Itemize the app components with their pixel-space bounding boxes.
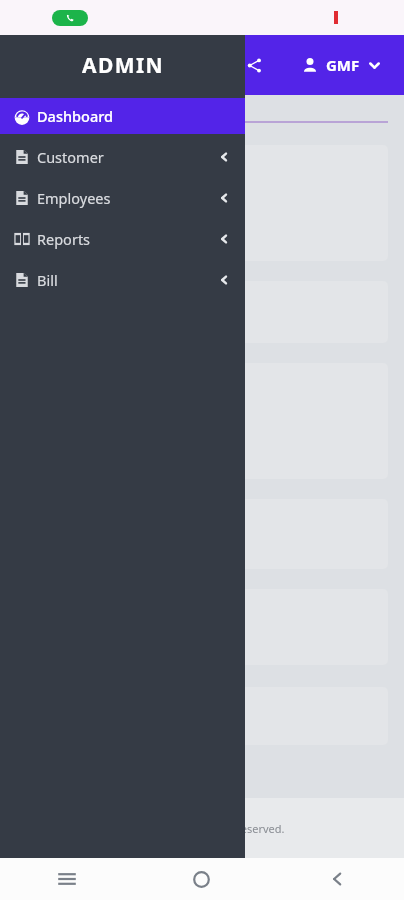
staticText: Customer xyxy=(37,147,104,167)
staticText: Bill xyxy=(37,270,58,290)
staticText: Employees xyxy=(37,188,111,208)
button[interactable]: Back xyxy=(269,858,404,900)
button[interactable] xyxy=(14,589,388,665)
button[interactable]: Recent apps xyxy=(0,858,134,900)
staticText: Reports xyxy=(37,229,91,249)
button[interactable] xyxy=(14,363,388,479)
staticText: Dashboard xyxy=(37,106,114,126)
button[interactable]: Employees xyxy=(0,180,245,216)
button[interactable]: Customer xyxy=(0,139,245,175)
button[interactable] xyxy=(14,145,388,261)
button[interactable]: GMF xyxy=(292,47,390,83)
button[interactable] xyxy=(14,687,388,745)
button[interactable]: Bill xyxy=(0,262,245,298)
button[interactable]: ADMIN xyxy=(0,35,245,95)
button[interactable] xyxy=(14,281,388,343)
staticText: © 2021 GMF. All rights reserved. xyxy=(119,821,285,836)
staticText: ADMIN xyxy=(82,51,164,80)
button[interactable]: Dashboard xyxy=(0,98,245,134)
button[interactable]: Courier xyxy=(14,499,388,569)
button[interactable]: Reports xyxy=(0,221,245,257)
staticText: GMF xyxy=(326,55,360,75)
button[interactable]: Home xyxy=(134,858,269,900)
button[interactable]: Share xyxy=(234,45,274,85)
